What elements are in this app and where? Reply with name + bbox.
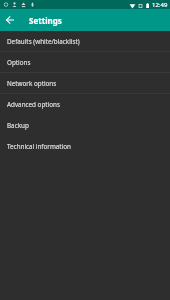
button[interactable]: Advanced options [0, 94, 170, 115]
button[interactable] [0, 10, 20, 30]
button[interactable]: Network options [0, 73, 170, 94]
staticText: Settings [29, 15, 62, 26]
button[interactable]: Defaults (white/blacklist) [0, 31, 170, 52]
staticText: Defaults (white/blacklist) [7, 37, 80, 46]
button[interactable]: Technical information [0, 136, 170, 157]
staticText: Advanced options [7, 100, 60, 109]
staticText: Technical information [7, 142, 71, 151]
button[interactable]: Backup [0, 115, 170, 136]
staticText: Network options [7, 79, 57, 88]
staticText: Options [7, 58, 31, 67]
button[interactable]: Options [0, 52, 170, 73]
staticText: 12:49 [152, 1, 168, 9]
staticText: Backup [7, 121, 29, 130]
